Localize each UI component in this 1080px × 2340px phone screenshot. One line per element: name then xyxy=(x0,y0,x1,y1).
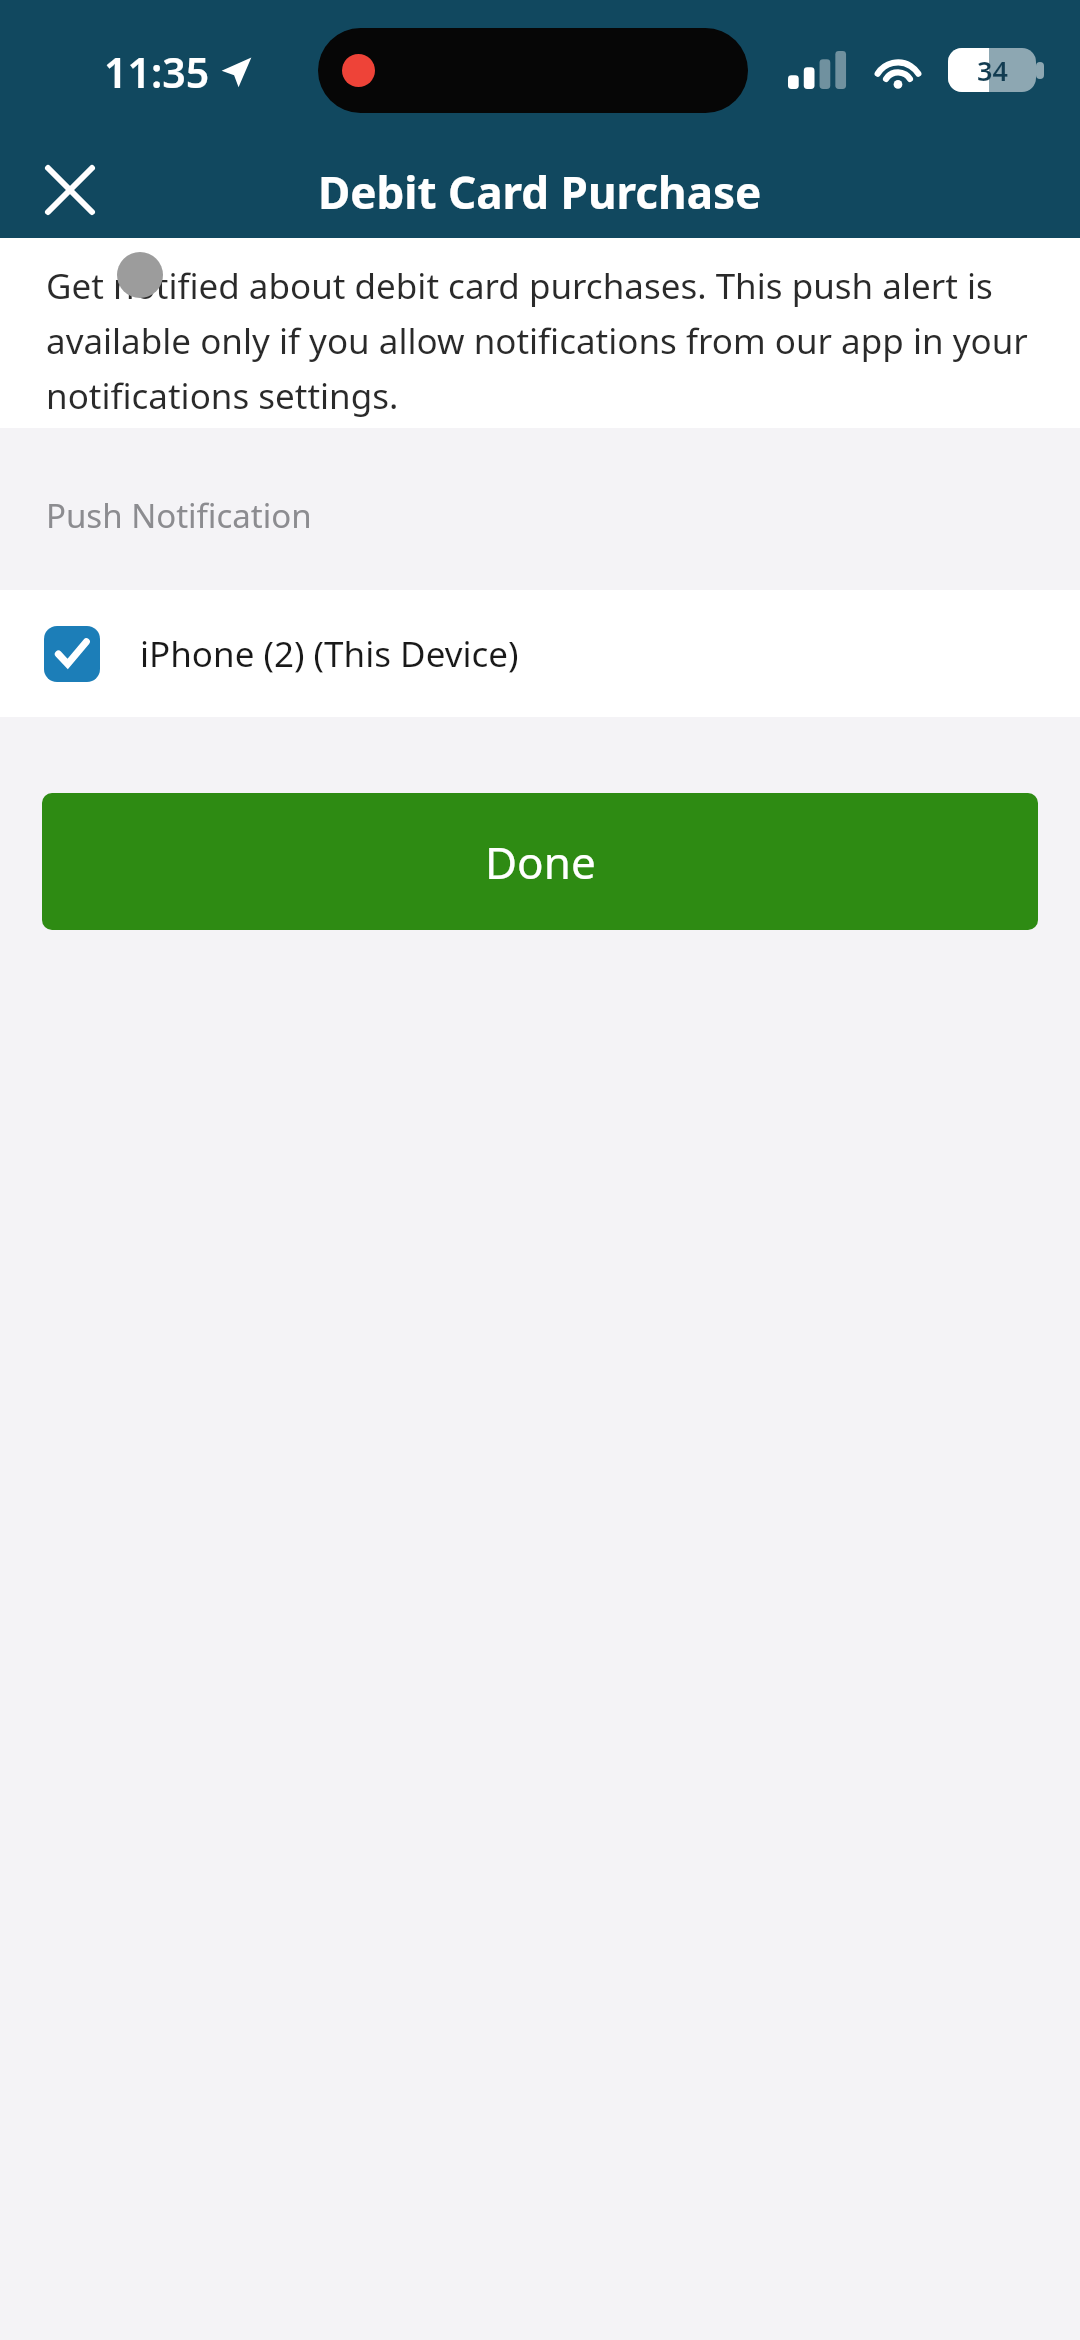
button[interactable]: Done xyxy=(42,793,1038,930)
staticText: Get notified about debit card purchases.… xyxy=(46,262,1044,419)
button[interactable]: Close xyxy=(22,142,118,238)
staticText: 34 xyxy=(977,52,1008,89)
staticText: Push Notification xyxy=(46,493,312,538)
staticText: 11:35 xyxy=(104,44,210,100)
button[interactable]: iPhone (2) (This Device) xyxy=(0,590,1080,717)
staticText: Debit Card Purchase xyxy=(318,162,762,222)
staticText: iPhone (2) (This Device) xyxy=(140,630,519,678)
staticText: Done xyxy=(485,832,596,892)
